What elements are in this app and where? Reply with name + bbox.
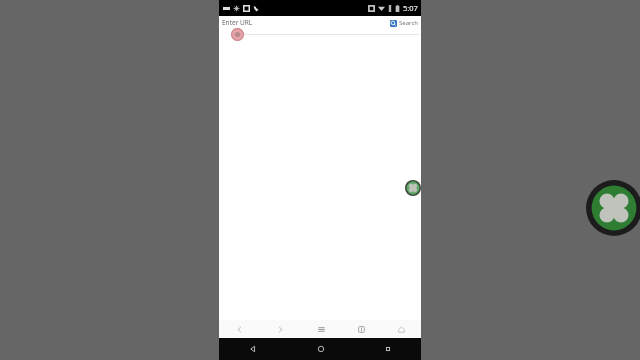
button[interactable]: Recents (354, 338, 421, 360)
button[interactable]: Accessibility menu (405, 180, 421, 196)
button[interactable]: Toolbar action (381, 320, 421, 338)
button[interactable]: Back (219, 338, 287, 360)
button[interactable]: Home (287, 338, 354, 360)
button[interactable]: Site icon (231, 28, 244, 41)
staticText: 5:07 (403, 3, 418, 13)
button[interactable]: Enter URL (222, 18, 253, 27)
button[interactable]: Toolbar action (341, 320, 381, 338)
button[interactable]: Toolbar action (219, 320, 260, 338)
button[interactable]: Accessibility menu (586, 180, 640, 236)
staticText: Search (399, 19, 418, 27)
staticText: Enter URL (222, 18, 253, 27)
button[interactable]: Toolbar action (301, 320, 341, 338)
button[interactable]: Toolbar action (260, 320, 301, 338)
button[interactable]: Search (390, 19, 418, 27)
